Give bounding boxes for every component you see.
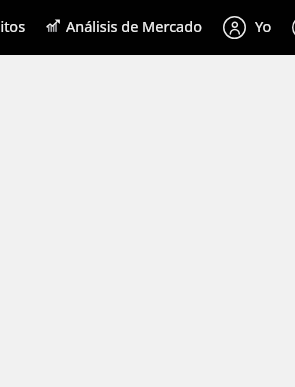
button[interactable]: Ajustes: [282, 0, 295, 55]
staticText: Yo: [255, 16, 272, 36]
button[interactable]: Análisis de Mercado: [36, 0, 212, 55]
button[interactable]: Yo: [213, 0, 282, 55]
staticText: Depósitos: [0, 16, 26, 36]
button[interactable]: Depósitos: [0, 0, 36, 55]
staticText: Análisis de Mercado: [66, 16, 202, 36]
